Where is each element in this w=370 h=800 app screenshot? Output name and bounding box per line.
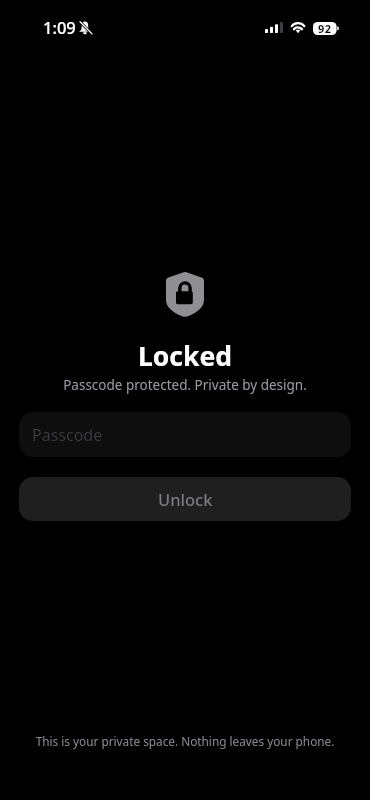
other: Locked shield xyxy=(166,272,204,317)
staticText: Locked xyxy=(0,338,370,374)
other: Battery 92 percent xyxy=(313,22,339,37)
staticText: Passcode protected. Private by design. xyxy=(0,376,370,394)
staticText: Passcode xyxy=(32,424,103,446)
other: Cellular signal xyxy=(265,22,283,33)
other: Silent mode xyxy=(79,21,92,35)
other: Wi-Fi xyxy=(290,22,306,33)
staticText: 1:09 xyxy=(43,16,76,38)
staticText: 92 xyxy=(318,21,332,36)
staticText: Unlock xyxy=(158,488,213,510)
staticText: This is your private space. Nothing leav… xyxy=(0,733,370,749)
button[interactable]: Unlock xyxy=(19,477,351,521)
button[interactable]: Passcode xyxy=(19,412,351,457)
